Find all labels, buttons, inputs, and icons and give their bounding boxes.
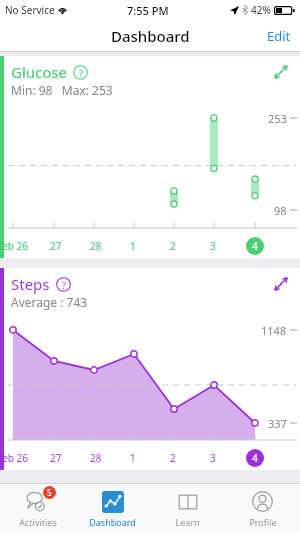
button[interactable]: Steps help bbox=[56, 277, 71, 292]
button[interactable]: Expand chart bbox=[270, 61, 292, 83]
staticText: 3 bbox=[210, 451, 216, 465]
staticText: 5 bbox=[47, 487, 52, 498]
staticText: Learn bbox=[175, 516, 200, 528]
staticText: 1 bbox=[130, 239, 136, 253]
staticText: 4 bbox=[252, 239, 258, 253]
staticText: 1 bbox=[130, 451, 136, 465]
staticText: Profile bbox=[249, 516, 277, 528]
staticText: Feb 26 bbox=[0, 451, 29, 465]
button[interactable]: Learn bbox=[150, 484, 225, 533]
staticText: 2 bbox=[170, 239, 176, 253]
staticText: ? bbox=[79, 67, 83, 79]
staticText: No Service bbox=[5, 3, 55, 17]
staticText: 27 bbox=[50, 451, 62, 465]
staticText: 7:55 PM bbox=[127, 3, 169, 18]
button[interactable]: 4 bbox=[246, 449, 264, 467]
staticText: 42% bbox=[251, 3, 271, 17]
staticText: 1148 bbox=[261, 323, 287, 338]
button[interactable]: Expand chart bbox=[270, 273, 292, 295]
staticText: Average : 743 bbox=[11, 294, 88, 310]
button[interactable]: Edit bbox=[258, 20, 300, 52]
staticText: Dashboard bbox=[89, 516, 136, 528]
staticText: 2 bbox=[170, 451, 176, 465]
staticText: Steps bbox=[11, 274, 50, 294]
staticText: Edit bbox=[267, 27, 291, 45]
staticText: 4 bbox=[252, 451, 258, 465]
button[interactable]: Glucose help bbox=[73, 65, 88, 80]
staticText: 3 bbox=[210, 239, 216, 253]
staticText: 27 bbox=[50, 239, 62, 253]
staticText: ? bbox=[62, 279, 66, 291]
button[interactable]: Dashboard bbox=[75, 484, 150, 533]
button[interactable]: Profile bbox=[225, 484, 300, 533]
button[interactable]: 5 bbox=[0, 484, 75, 533]
staticText: 98 bbox=[274, 203, 287, 218]
staticText: Min: 98 Max: 253 bbox=[11, 82, 113, 98]
staticText: Feb 26 bbox=[0, 239, 29, 253]
staticText: 28 bbox=[90, 451, 102, 465]
staticText: 253 bbox=[268, 111, 287, 126]
button[interactable]: 4 bbox=[246, 237, 264, 255]
staticText: Glucose bbox=[11, 62, 67, 82]
staticText: Activities bbox=[19, 516, 57, 528]
staticText: 337 bbox=[268, 416, 287, 431]
staticText: 28 bbox=[90, 239, 102, 253]
staticText: Dashboard bbox=[111, 26, 190, 46]
